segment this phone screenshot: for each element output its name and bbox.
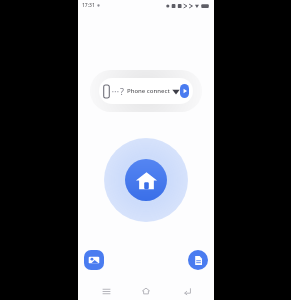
button[interactable]: Play (180, 84, 189, 98)
button[interactable]: Back (174, 282, 200, 300)
button[interactable]: ? (99, 78, 193, 104)
button[interactable]: Documents (188, 250, 208, 270)
button[interactable]: Recents (93, 282, 119, 300)
button[interactable]: Home (133, 282, 159, 300)
button[interactable]: Media (84, 250, 104, 270)
button[interactable]: Home (125, 159, 167, 201)
staticText: 17:31 (82, 2, 95, 9)
staticText: Phone connect (127, 87, 170, 95)
staticText: ? (120, 85, 124, 97)
